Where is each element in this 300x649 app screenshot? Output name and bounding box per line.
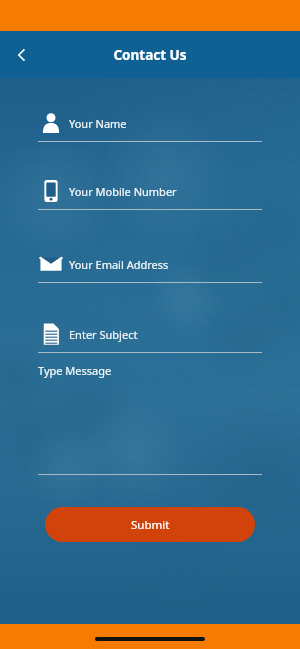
- button[interactable]: Your Mobile Number: [0, 179, 300, 210]
- staticText: Enter Subject: [69, 327, 138, 342]
- button[interactable]: Submit: [45, 507, 255, 542]
- button[interactable]: Your Email Address: [0, 252, 300, 283]
- button[interactable]: Enter Subject: [0, 322, 300, 353]
- button[interactable]: Back: [0, 33, 44, 77]
- staticText: Contact Us: [113, 46, 187, 64]
- button[interactable]: Your Name: [0, 111, 300, 142]
- button[interactable]: Type Message: [0, 353, 300, 475]
- staticText: Your Email Address: [69, 257, 169, 272]
- staticText: Your Name: [69, 116, 127, 131]
- staticText: Submit: [131, 517, 170, 533]
- staticText: Your Mobile Number: [69, 184, 177, 199]
- staticText: Type Message: [38, 363, 112, 378]
